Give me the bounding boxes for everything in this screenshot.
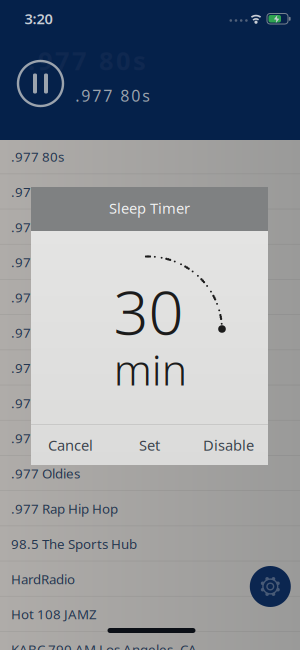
staticText: Hot 108 JAMZ	[11, 605, 97, 623]
button[interactable]: Settings	[250, 566, 291, 607]
staticText: .977 80s	[11, 148, 64, 165]
button[interactable]: .977 New Wave	[0, 421, 300, 456]
staticText: Disable	[203, 435, 254, 455]
button[interactable]: .977 90s	[0, 174, 300, 209]
staticText: Sleep Timer	[109, 198, 190, 218]
button[interactable]: Set	[110, 425, 189, 465]
staticText: KABC 790 AM Los Angeles, CA	[11, 640, 197, 650]
button[interactable]: .977 Country	[0, 280, 300, 315]
button[interactable]: Pause	[18, 61, 63, 106]
staticText: .977 Oldies	[11, 464, 80, 482]
staticText: .977 90s	[11, 183, 64, 201]
staticText: .977 80s	[75, 85, 150, 106]
staticText: 3:20	[24, 9, 52, 28]
staticText: HardRadio	[11, 570, 75, 588]
staticText: .977 Hits	[11, 324, 66, 341]
staticText: .977 New Wave	[11, 429, 106, 447]
button[interactable]: KABC 790 AM Los Angeles, CA	[0, 632, 300, 650]
staticText: .977 Mix	[11, 394, 64, 412]
button[interactable]: .977 Mix	[0, 385, 300, 421]
staticText: Cancel	[48, 435, 93, 455]
button[interactable]: .977 Oldies	[0, 456, 300, 491]
button[interactable]: 98.5 The Sports Hub	[0, 526, 300, 561]
staticText: 30	[113, 270, 183, 352]
button[interactable]: HardRadio	[0, 561, 300, 597]
button[interactable]: .977 Hits	[0, 315, 300, 350]
staticText: .977 Rap Hip Hop	[11, 500, 118, 517]
button[interactable]: .977 Alternative	[0, 209, 300, 245]
staticText: .977 Country	[11, 288, 92, 306]
button[interactable]: .977 80s	[0, 139, 300, 174]
staticText: 98.5 The Sports Hub	[11, 535, 137, 553]
button[interactable]: .977 Classic Rock	[0, 245, 300, 280]
staticText: min	[114, 341, 187, 397]
button[interactable]: .977 Rap Hip Hop	[0, 491, 300, 526]
staticText: .977 80s	[28, 43, 146, 77]
staticText: .977 Alternative	[11, 218, 111, 236]
button[interactable]: .977 Jamz	[0, 350, 300, 385]
staticText: Set	[139, 435, 160, 455]
staticText: .977 Classic Rock	[11, 253, 113, 271]
button[interactable]: Disable	[189, 425, 268, 465]
button[interactable]: Cancel	[31, 425, 110, 465]
button[interactable]: Hot 108 JAMZ	[0, 597, 300, 632]
staticText: .977 Jamz	[11, 359, 71, 377]
